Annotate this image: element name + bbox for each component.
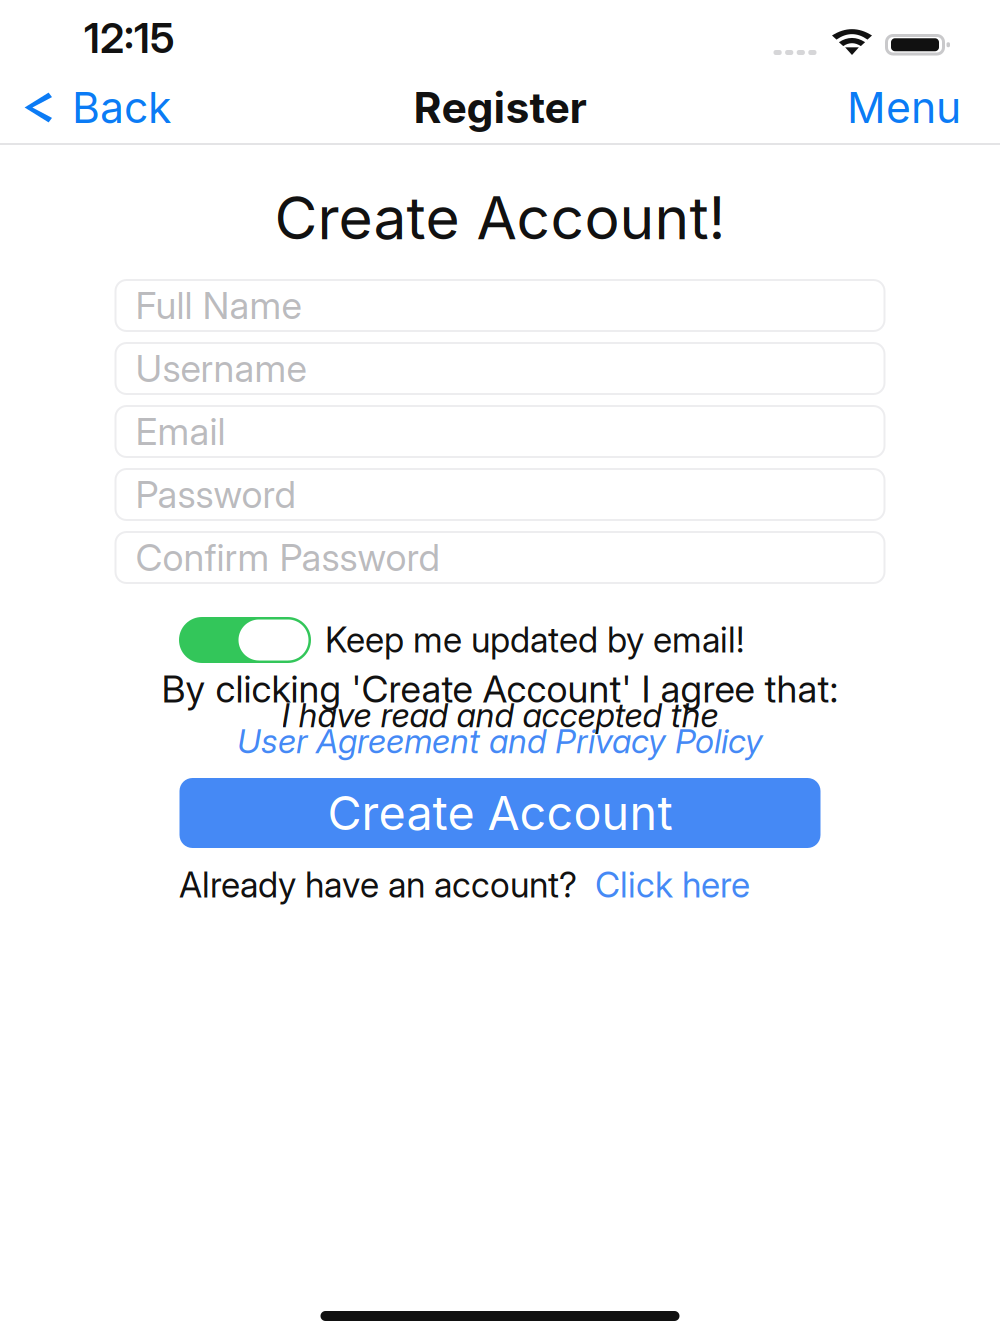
staticText: Password: [135, 472, 295, 517]
button[interactable]: Menu: [770, 72, 1000, 143]
staticText: Create Account: [327, 785, 672, 841]
staticText: Create Account!: [274, 182, 725, 253]
button[interactable]: Back: [0, 72, 230, 143]
staticText: Click here: [595, 864, 750, 906]
button[interactable]: Full Name: [115, 280, 884, 331]
staticText: User Agreement and Privacy Policy: [237, 721, 763, 761]
button[interactable]: Password: [115, 469, 884, 520]
staticText: I have read and accepted the: [281, 695, 718, 735]
staticText: Email: [135, 409, 225, 454]
staticText: By clicking 'Create Account' I agree tha…: [161, 666, 838, 712]
staticText: Already have an account?: [179, 864, 577, 906]
button[interactable]: Create Account: [179, 778, 820, 848]
button[interactable]: User Agreement and Privacy Policy: [237, 728, 763, 754]
staticText: Keep me updated by email!: [325, 619, 744, 661]
staticText: Username: [135, 346, 306, 391]
button[interactable]: Click here: [595, 864, 750, 906]
button[interactable]: Username: [115, 343, 884, 394]
button[interactable]: Keep me updated by email: [179, 617, 311, 663]
staticText: Register: [413, 82, 586, 133]
staticText: Full Name: [135, 283, 301, 328]
staticText: Confirm Password: [135, 535, 439, 580]
staticText: 12:15: [84, 13, 175, 63]
button[interactable]: Confirm Password: [115, 532, 884, 583]
staticText: Menu: [847, 82, 961, 133]
button[interactable]: Email: [115, 406, 884, 457]
staticText: Back: [72, 82, 171, 133]
